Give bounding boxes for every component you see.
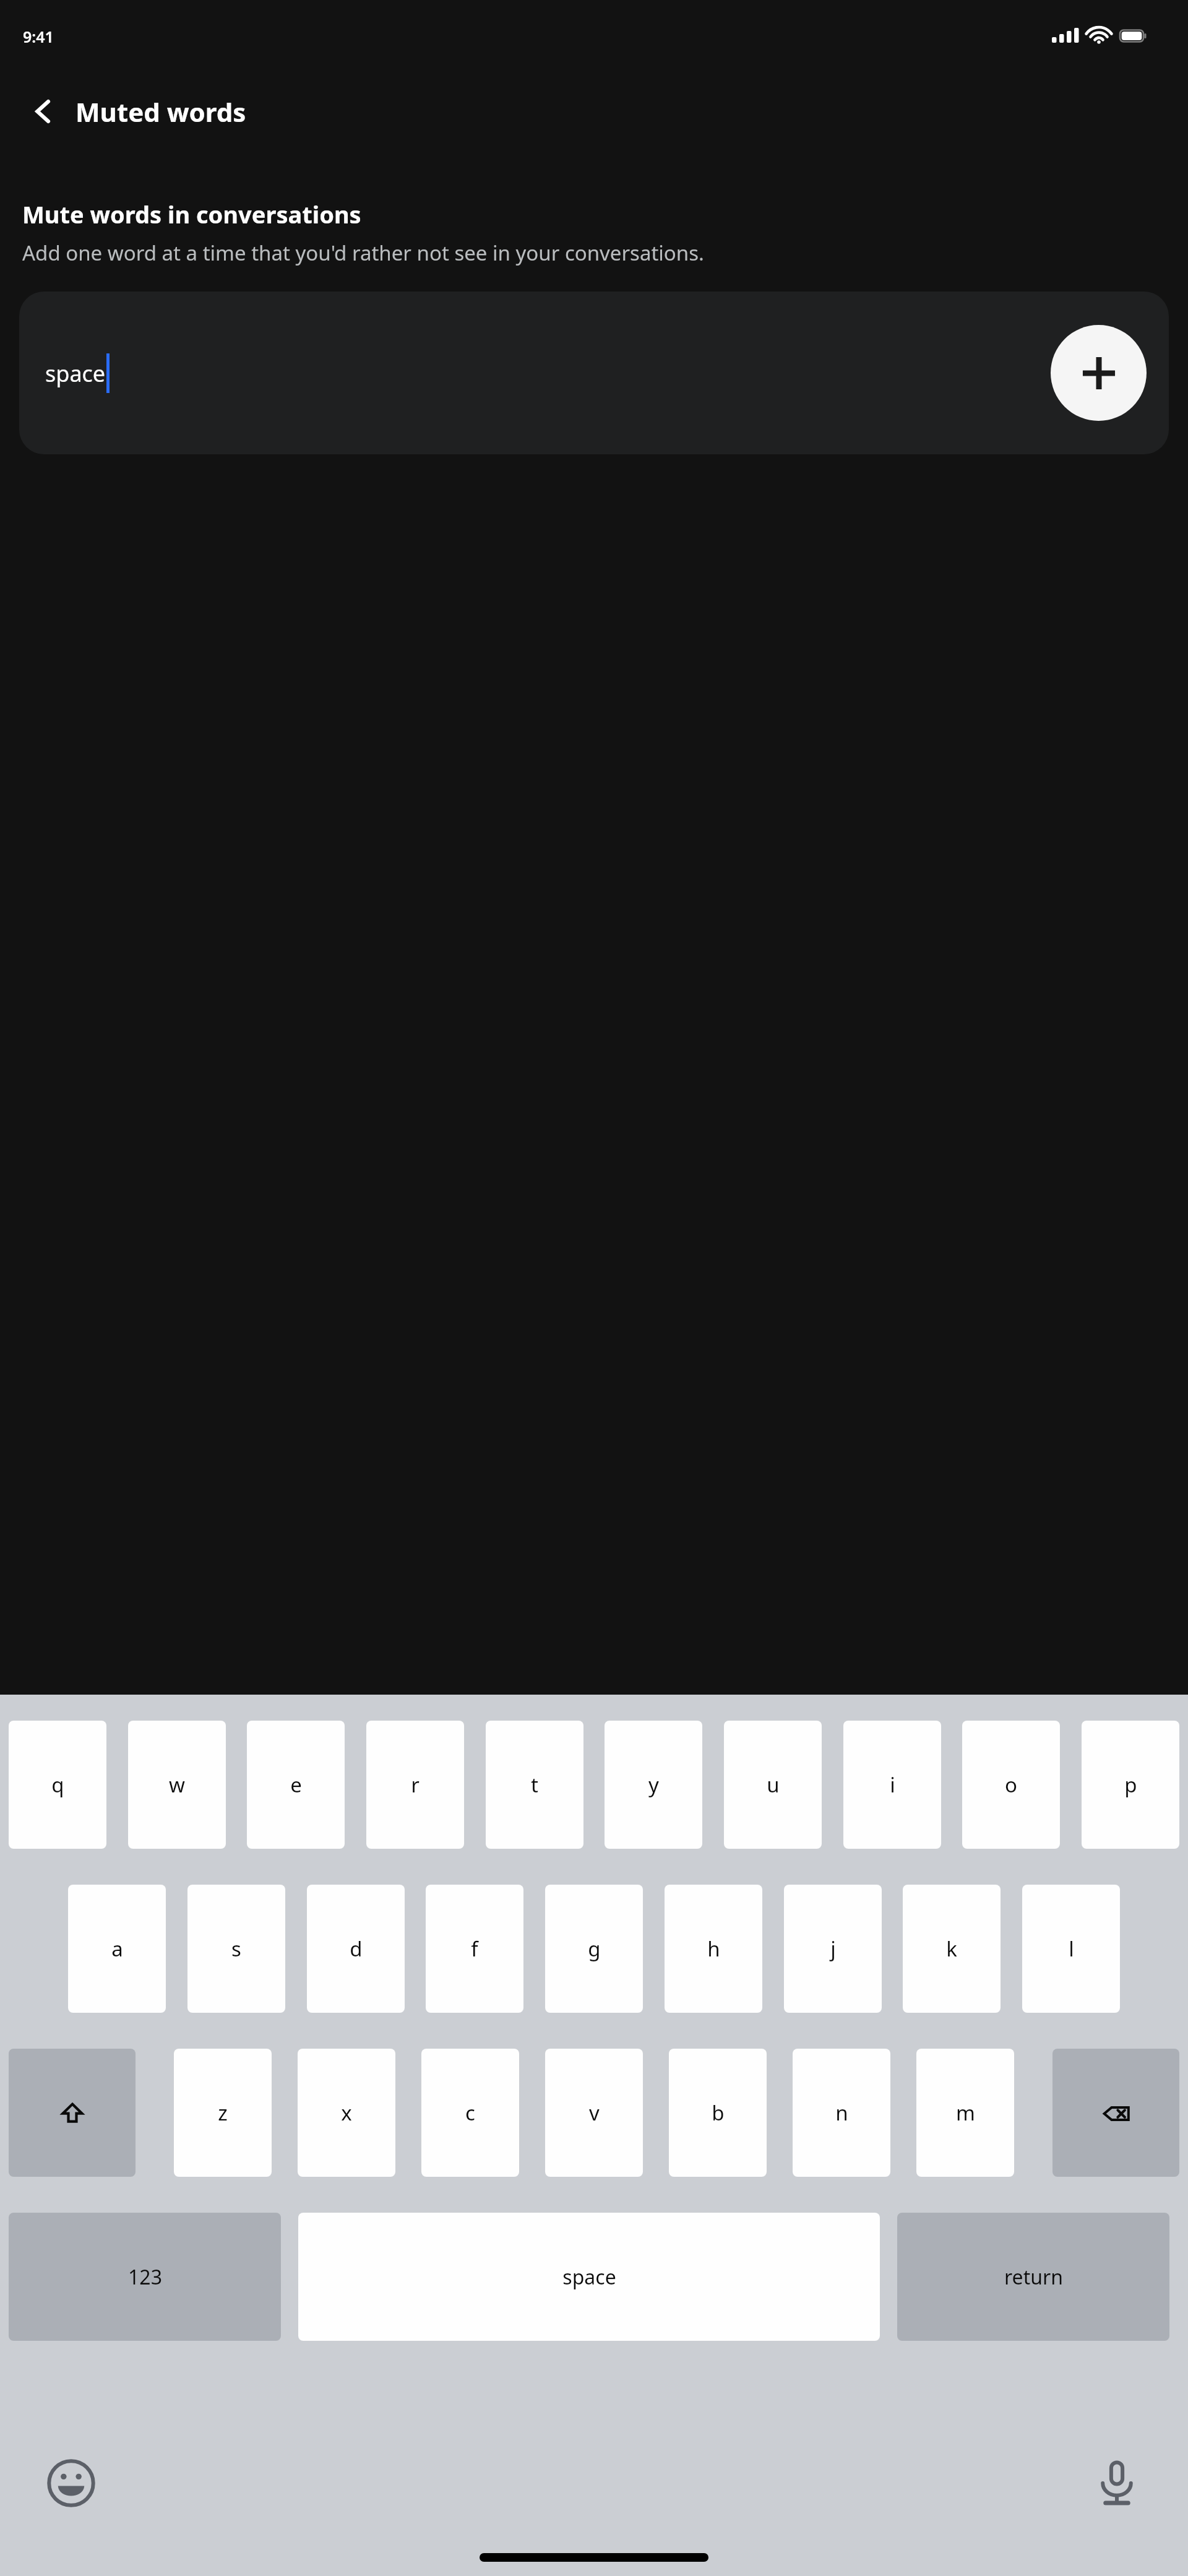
staticText: u — [767, 1771, 780, 1799]
button[interactable]: Shift — [9, 2049, 136, 2177]
button[interactable]: space — [19, 292, 1169, 454]
staticText: a — [111, 1935, 123, 1963]
button[interactable]: h — [665, 1885, 762, 2013]
staticText: return — [1004, 2263, 1063, 2291]
button[interactable]: Back — [21, 89, 66, 134]
staticText: n — [835, 2099, 848, 2127]
staticText: i — [890, 1771, 895, 1799]
button[interactable]: space — [298, 2213, 880, 2341]
staticText: w — [169, 1771, 185, 1799]
staticText: t — [531, 1771, 538, 1799]
button[interactable]: g — [545, 1885, 643, 2013]
staticText: c — [465, 2099, 475, 2127]
button[interactable]: q — [9, 1721, 106, 1849]
button[interactable]: m — [916, 2049, 1014, 2177]
staticText: Mute words in conversations — [22, 198, 361, 230]
staticText: b — [712, 2099, 725, 2127]
button[interactable]: y — [605, 1721, 702, 1849]
staticText: Add one word at a time that you'd rather… — [22, 239, 704, 267]
button[interactable]: Backspace — [1052, 2049, 1179, 2177]
button[interactable]: n — [793, 2049, 890, 2177]
button[interactable]: return — [897, 2213, 1169, 2341]
button[interactable]: p — [1082, 1721, 1179, 1849]
staticText: r — [411, 1771, 420, 1799]
staticText: l — [1069, 1935, 1074, 1963]
button[interactable]: c — [421, 2049, 519, 2177]
button[interactable]: w — [128, 1721, 226, 1849]
staticText: v — [589, 2099, 600, 2127]
staticText: d — [350, 1935, 363, 1963]
button[interactable]: r — [366, 1721, 464, 1849]
button[interactable]: v — [545, 2049, 643, 2177]
staticText: f — [471, 1935, 478, 1963]
staticText: space — [562, 2263, 616, 2291]
staticText: z — [218, 2099, 228, 2127]
button[interactable]: k — [903, 1885, 1001, 2013]
button[interactable]: Add word — [1051, 325, 1147, 421]
button[interactable]: s — [187, 1885, 285, 2013]
staticText: m — [956, 2099, 975, 2127]
button[interactable]: t — [486, 1721, 583, 1849]
button[interactable]: z — [174, 2049, 272, 2177]
staticText: j — [830, 1935, 836, 1963]
button[interactable]: a — [68, 1885, 166, 2013]
button[interactable]: i — [843, 1721, 941, 1849]
staticText: y — [648, 1771, 659, 1799]
button[interactable]: u — [724, 1721, 822, 1849]
button[interactable]: f — [426, 1885, 523, 2013]
staticText: Muted words — [75, 94, 246, 129]
staticText: q — [51, 1771, 64, 1799]
staticText: o — [1005, 1771, 1017, 1799]
button[interactable]: Dictate — [1083, 2449, 1151, 2517]
staticText: 123 — [128, 2263, 162, 2291]
button[interactable]: d — [307, 1885, 405, 2013]
button[interactable]: x — [298, 2049, 395, 2177]
button[interactable]: Emoji — [37, 2449, 105, 2517]
staticText: k — [946, 1935, 957, 1963]
staticText: e — [290, 1771, 302, 1799]
button[interactable]: l — [1022, 1885, 1120, 2013]
button[interactable]: j — [784, 1885, 882, 2013]
staticText: h — [707, 1935, 720, 1963]
button[interactable]: o — [962, 1721, 1060, 1849]
staticText: g — [588, 1935, 601, 1963]
staticText: 9:41 — [23, 26, 54, 47]
staticText: space — [45, 358, 106, 389]
button[interactable]: b — [669, 2049, 767, 2177]
button[interactable]: e — [247, 1721, 345, 1849]
staticText: x — [341, 2099, 352, 2127]
staticText: p — [1124, 1771, 1137, 1799]
staticText: s — [231, 1935, 241, 1963]
button[interactable]: 123 — [9, 2213, 281, 2341]
